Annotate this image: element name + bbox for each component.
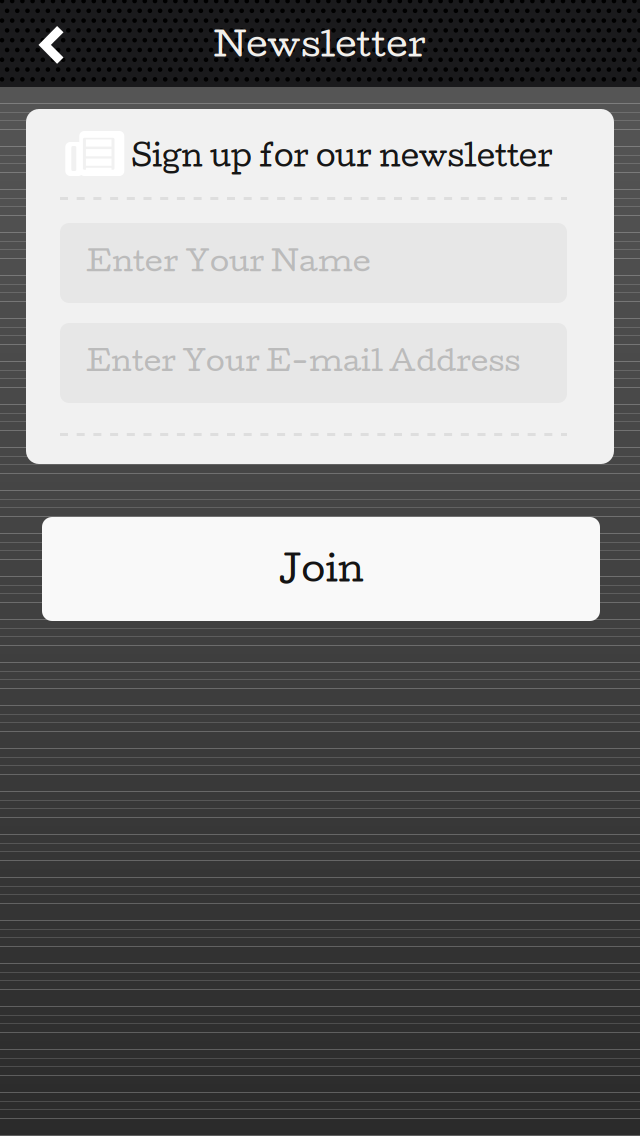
button[interactable]: Enter Your E-mail Address [60, 323, 567, 403]
staticText: Enter Your E-mail Address [86, 342, 520, 377]
staticText: Enter Your Name [86, 241, 371, 278]
staticText: Sign up for our newsletter [131, 136, 553, 173]
staticText: Newsletter [213, 21, 426, 64]
button[interactable]: Enter Your Name [60, 223, 567, 303]
staticText: Join [278, 544, 363, 590]
button[interactable]: Join [42, 517, 600, 621]
button[interactable]: Back [5, 2, 97, 88]
